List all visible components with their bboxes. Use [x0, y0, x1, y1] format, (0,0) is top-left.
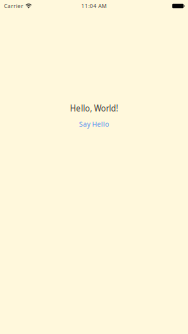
- staticText: 11:04 AM: [81, 2, 107, 10]
- staticText: Hello, World!: [70, 103, 118, 114]
- button[interactable]: Say Hello: [75, 118, 113, 130]
- staticText: Say Hello: [79, 120, 109, 128]
- staticText: Carrier: [4, 2, 23, 10]
